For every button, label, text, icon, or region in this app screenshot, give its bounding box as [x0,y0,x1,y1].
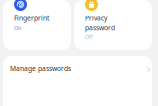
staticText: Manage passwords [10,64,71,73]
staticText: Privacy [85,13,107,22]
button[interactable] [3,56,152,106]
button[interactable]: Manage passwords [3,56,152,82]
staticText: Fingerprint [14,13,49,22]
staticText: password [85,23,115,32]
staticText: On [14,24,21,31]
staticText: Off [85,33,93,40]
button[interactable] [3,0,71,50]
button[interactable] [74,0,152,50]
